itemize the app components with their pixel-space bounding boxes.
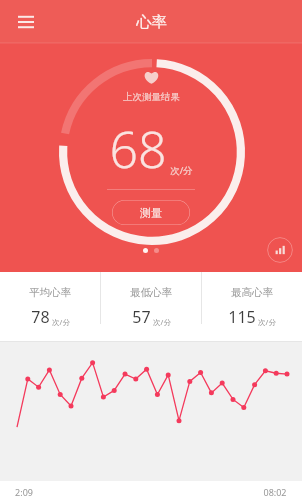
button[interactable]: 平均心率 [0,272,100,342]
staticText: 测量 [140,206,162,220]
button[interactable]: 最高心率 [202,272,302,342]
staticText: 最高心率 [231,286,273,299]
staticText: 上次测量结果 [123,91,180,103]
button[interactable]: 测量 [112,200,190,225]
staticText: 次/分 [170,164,193,177]
staticText: 08:02 [263,486,287,498]
staticText: 心率 [136,12,167,32]
button[interactable]: History chart [267,237,293,263]
staticText: 2:09 [15,486,33,498]
staticText: 57 [132,306,151,328]
staticText: 最低心率 [130,286,172,299]
staticText: 78 [31,306,50,328]
staticText: 平均心率 [29,286,71,299]
staticText: 次/分 [153,317,171,327]
staticText: 次/分 [52,317,70,327]
button[interactable]: 最低心率 [101,272,201,342]
staticText: 68 [109,115,167,183]
button[interactable]: Menu [11,7,41,37]
staticText: 115 [228,306,256,328]
staticText: 次/分 [258,317,276,327]
